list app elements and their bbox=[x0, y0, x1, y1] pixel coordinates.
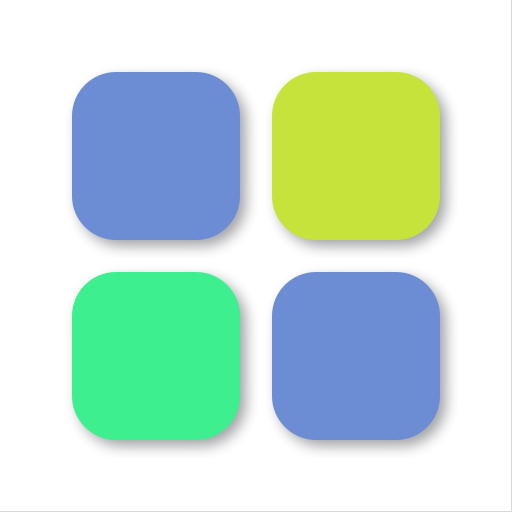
button[interactable]: Lime tile bbox=[272, 72, 440, 240]
button[interactable]: Blue tile bbox=[72, 72, 240, 240]
button[interactable]: Green tile bbox=[72, 272, 240, 440]
button[interactable]: Blue tile bbox=[272, 272, 440, 440]
